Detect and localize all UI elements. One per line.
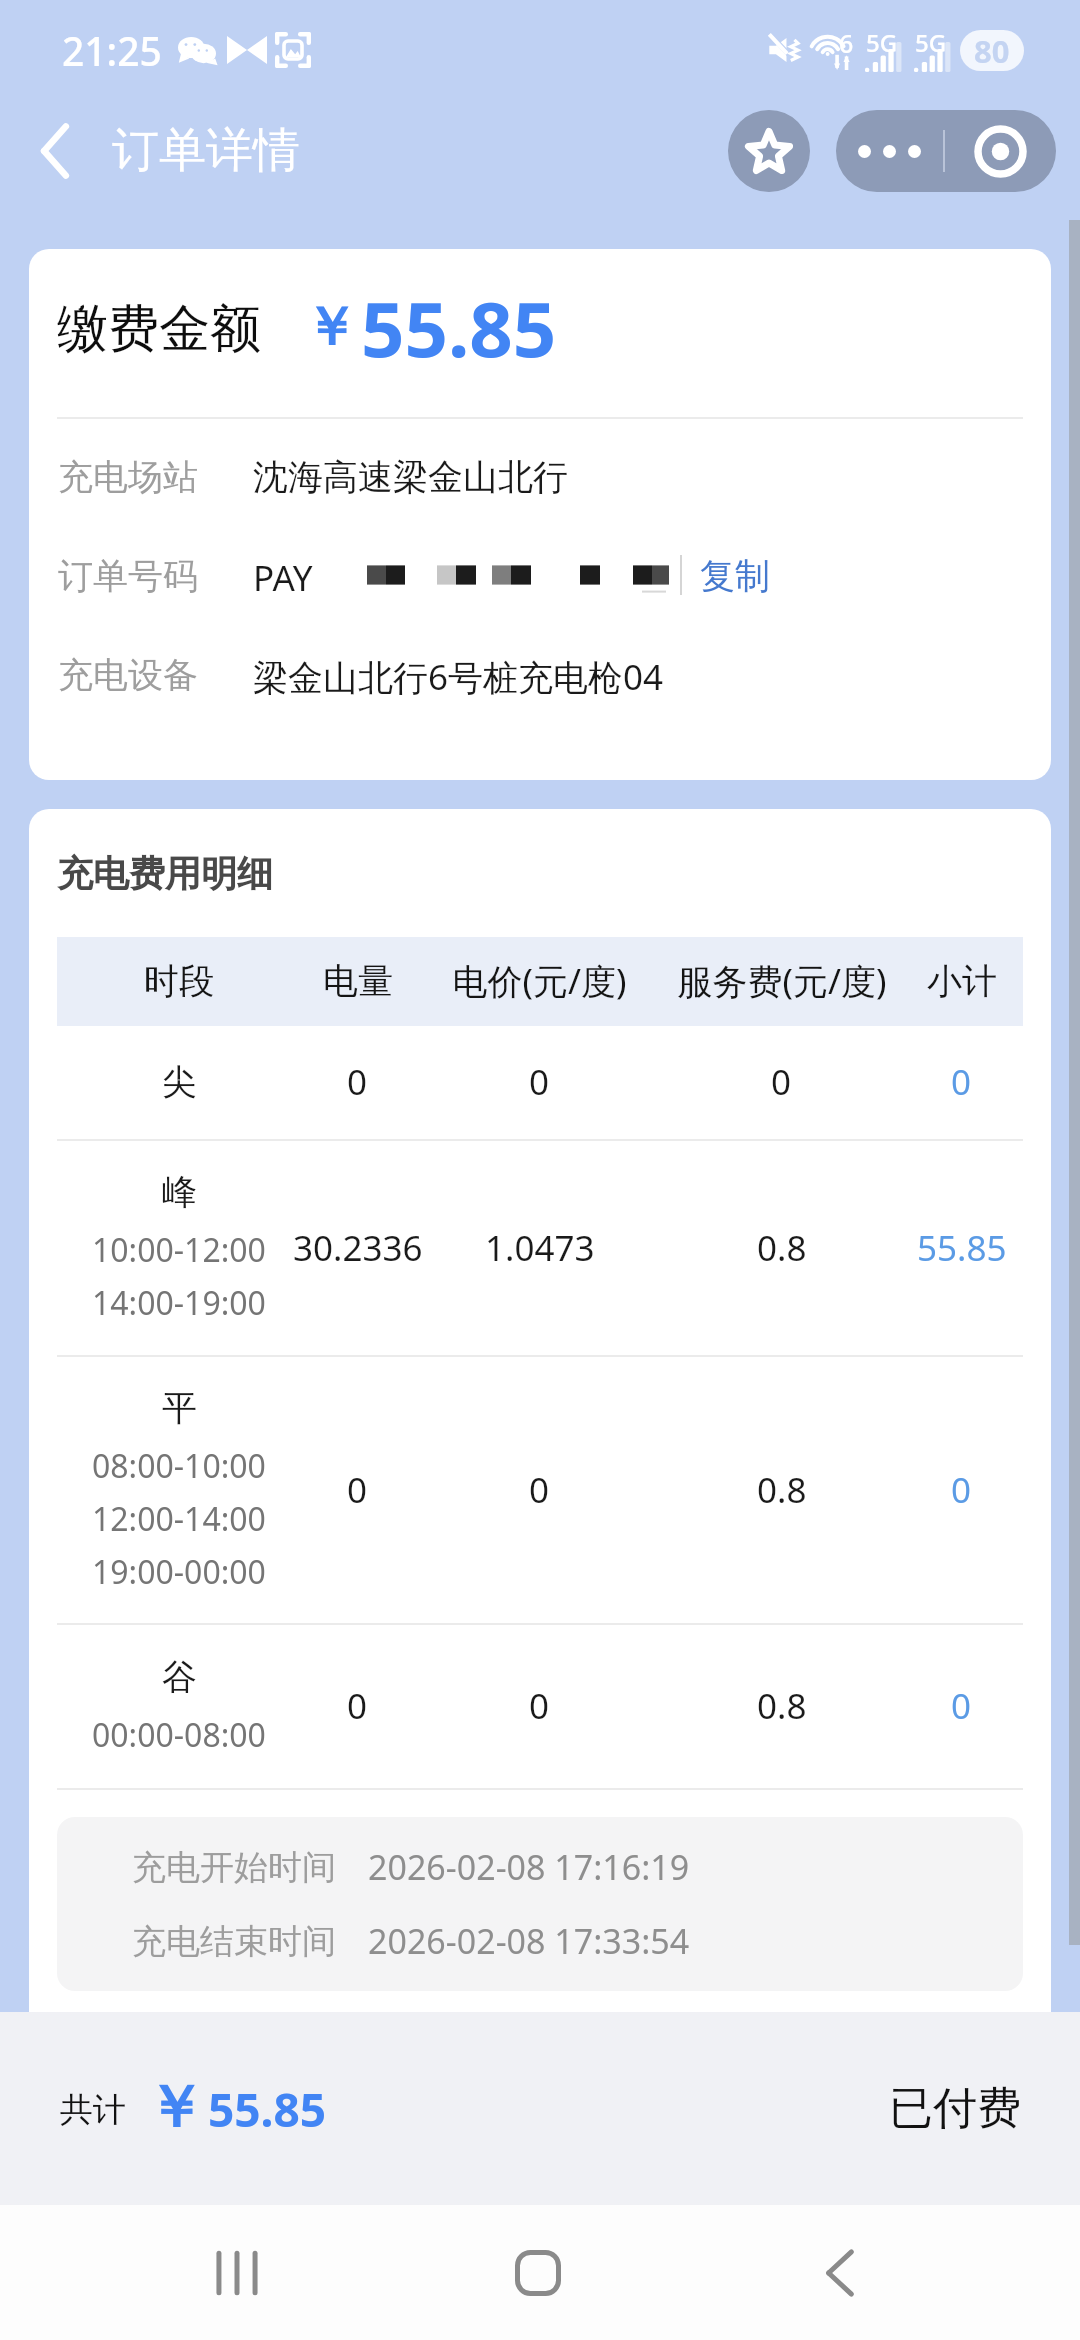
staticText: 0 [529, 1058, 550, 1106]
staticText: 14:00-19:00 [92, 1281, 266, 1325]
staticText: 00:00-08:00 [92, 1713, 266, 1757]
staticText: 12:00-14:00 [92, 1497, 266, 1541]
staticText: 谷 [162, 1655, 197, 1699]
staticText: 0 [951, 1058, 972, 1106]
staticText: 充电设备 [58, 653, 198, 695]
staticText: 充电场站 [58, 455, 198, 497]
staticText: 55.85 [208, 2078, 327, 2141]
button[interactable]: 收藏 [728, 110, 810, 192]
staticText: 峰 [162, 1170, 197, 1214]
staticText: 电价(元/度) [452, 957, 627, 1005]
staticText: 80 [974, 30, 1010, 71]
staticText: 10:00-12:00 [92, 1228, 266, 1272]
staticText: 电量 [323, 959, 393, 1003]
button[interactable]: 关闭 [945, 110, 1056, 192]
staticText: 0 [951, 1466, 972, 1514]
staticText: 1.0473 [485, 1224, 595, 1272]
staticText: 充电开始时间 [132, 1846, 336, 1889]
staticText: 尖 [162, 1060, 197, 1104]
staticText: 30.2336 [293, 1224, 423, 1272]
staticText: 充电费用明细 [57, 851, 273, 896]
staticText: 充电结束时间 [132, 1920, 336, 1963]
staticText: 0 [529, 1466, 550, 1514]
staticText: 0.8 [757, 1224, 807, 1272]
staticText: 订单号码 [58, 554, 198, 596]
staticText: 55.85 [361, 276, 557, 380]
staticText: 0 [347, 1466, 368, 1514]
staticText: 21:25 [62, 24, 162, 77]
staticText: 订单详情 [112, 121, 300, 180]
staticText: 2026-02-08 17:33:54 [368, 1918, 690, 1964]
staticText: 梁金山北行6号桩充电枪04 [253, 653, 664, 695]
button[interactable]: 返回 [750, 2205, 930, 2340]
staticText: 0.8 [757, 1682, 807, 1730]
staticText: ￥ [304, 294, 357, 361]
staticText: 复制 [700, 554, 770, 596]
button[interactable]: 返回 [24, 120, 86, 182]
staticText: 08:00-10:00 [92, 1444, 266, 1488]
staticText: 0 [951, 1682, 972, 1730]
staticText: 55.85 [917, 1224, 1007, 1272]
staticText: 19:00-00:00 [92, 1550, 266, 1594]
staticText: 服务费(元/度) [677, 957, 887, 1005]
button[interactable]: 最近任务 [147, 2205, 327, 2340]
staticText: 共计 [60, 2089, 126, 2131]
staticText: 5G [866, 26, 898, 59]
staticText: 0 [347, 1682, 368, 1730]
staticText: 小计 [927, 959, 997, 1003]
staticText: 已付费 [889, 2081, 1021, 2136]
staticText: 时段 [144, 959, 214, 1003]
staticText: ￥ [146, 2071, 204, 2144]
staticText: 6 [839, 26, 854, 60]
button[interactable]: 主页 [448, 2205, 628, 2340]
button[interactable]: 更多 [836, 110, 943, 192]
staticText: 5G [915, 26, 947, 59]
staticText: 0 [347, 1058, 368, 1106]
button[interactable]: 复制 [700, 554, 770, 596]
staticText: 0.8 [757, 1466, 807, 1514]
staticText: PAY [253, 554, 313, 596]
staticText: 0 [771, 1058, 792, 1106]
staticText: 平 [162, 1386, 197, 1430]
staticText: 2026-02-08 17:16:19 [368, 1844, 690, 1890]
staticText: 0 [529, 1682, 550, 1730]
staticText: 缴费金额 [57, 297, 261, 361]
staticText: 沈海高速梁金山北行 [253, 455, 568, 497]
